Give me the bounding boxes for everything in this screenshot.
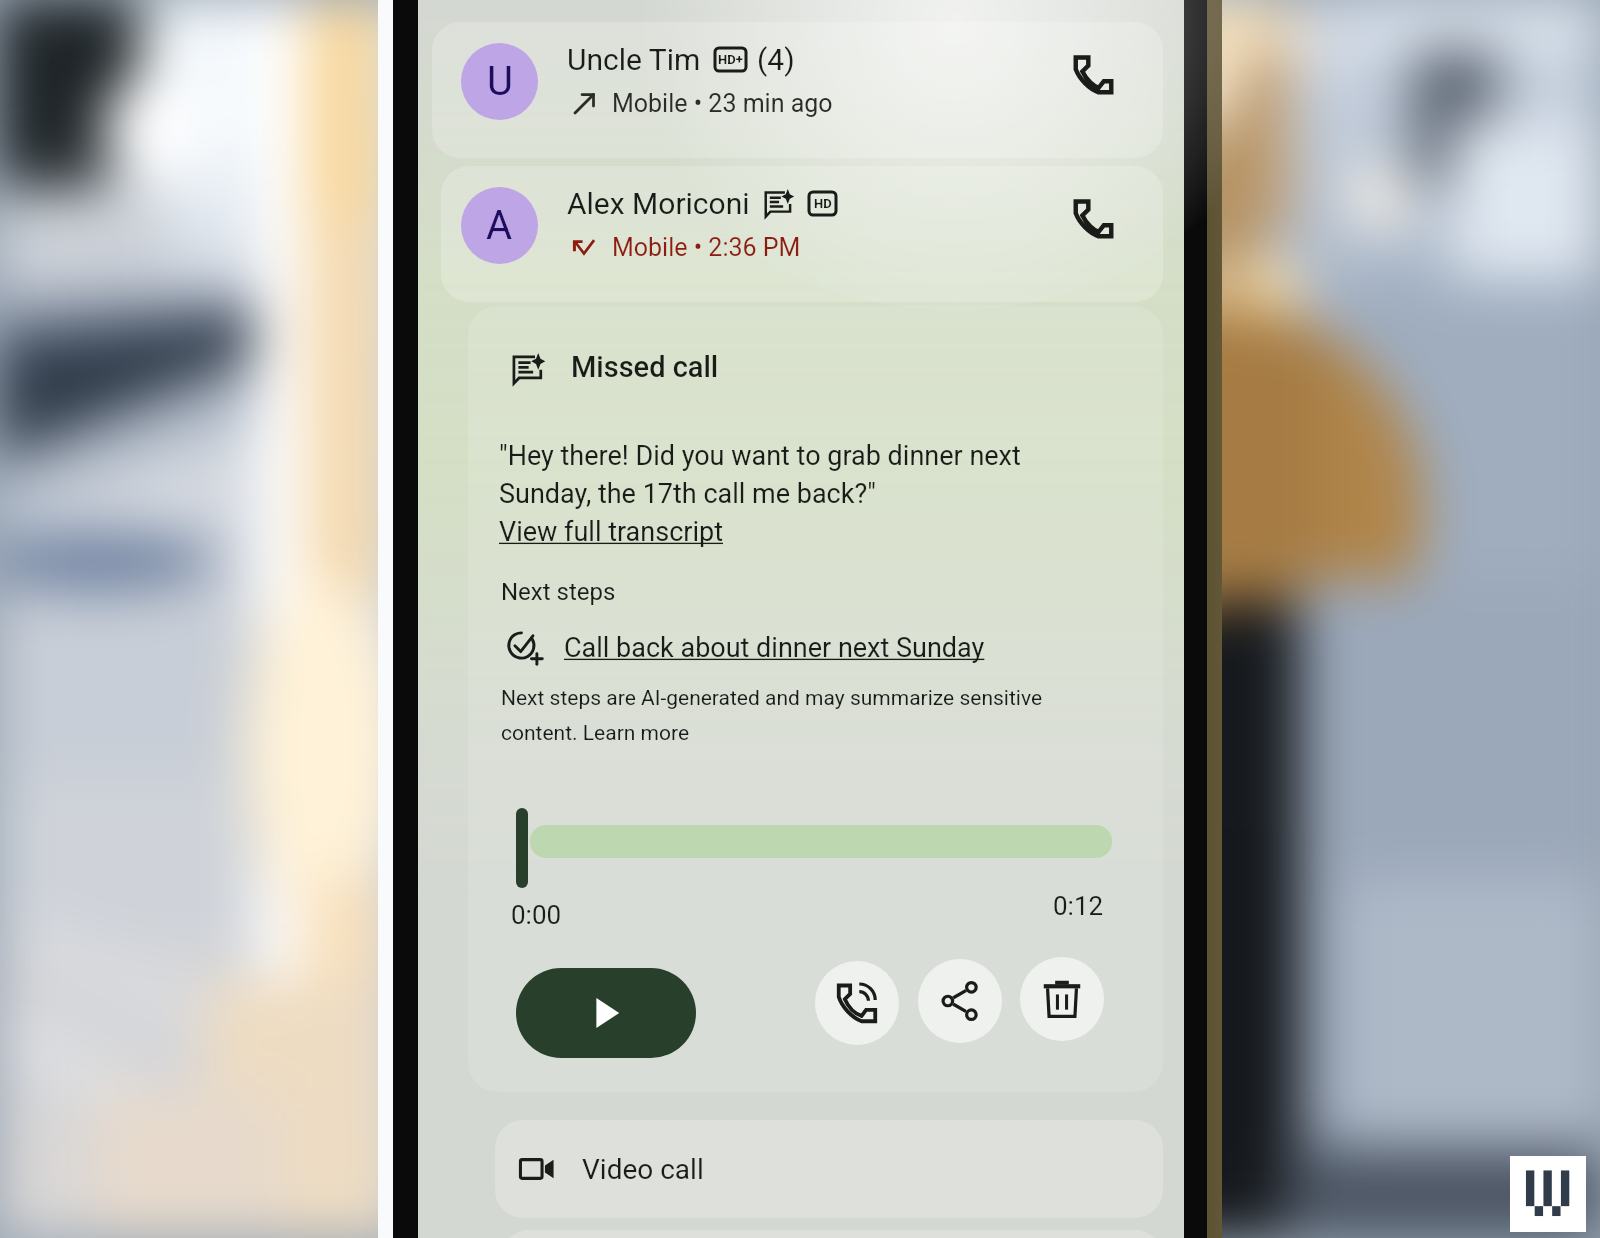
button[interactable]: Video call [495,1120,1163,1218]
button[interactable]: Call Alex Moriconi [1053,178,1133,258]
staticText: U [487,58,513,105]
staticText: Call back about dinner next Sunday [564,632,985,664]
button[interactable]: View full transcript [499,516,723,548]
staticText: (4) [757,42,795,77]
staticText: HD [814,196,832,211]
staticText: HD+ [718,52,743,67]
staticText: content. Learn more [501,721,690,746]
button[interactable]: Call Uncle Tim [1053,34,1133,114]
staticText: 0:12 [1053,891,1104,921]
staticText: Mobile • 23 min ago [612,89,833,118]
staticText: "Hey there! Did you want to grab dinner … [499,440,1021,472]
staticText: A [486,202,513,249]
staticText: Alex Moriconi [567,186,750,221]
staticText: Next steps [501,578,616,606]
staticText: 0:00 [511,900,562,930]
button[interactable]: A [441,166,1163,302]
staticText: Mobile • 2:36 PM [612,233,801,262]
staticText: Next steps are AI-generated and may summ… [501,686,1043,711]
button[interactable]: Share [918,959,1002,1043]
button[interactable]: Delete [1020,957,1104,1041]
button[interactable]: Play voicemail [516,968,696,1058]
staticText: Uncle Tim [567,42,701,77]
staticText: Video call [582,1153,704,1186]
staticText: Missed call [571,350,719,384]
button[interactable]: Call back about dinner next Sunday [507,630,985,666]
staticText: Sunday, the 17th call me back?" [499,478,876,510]
button[interactable]: U [432,22,1163,158]
button[interactable]: Call back [815,961,899,1045]
